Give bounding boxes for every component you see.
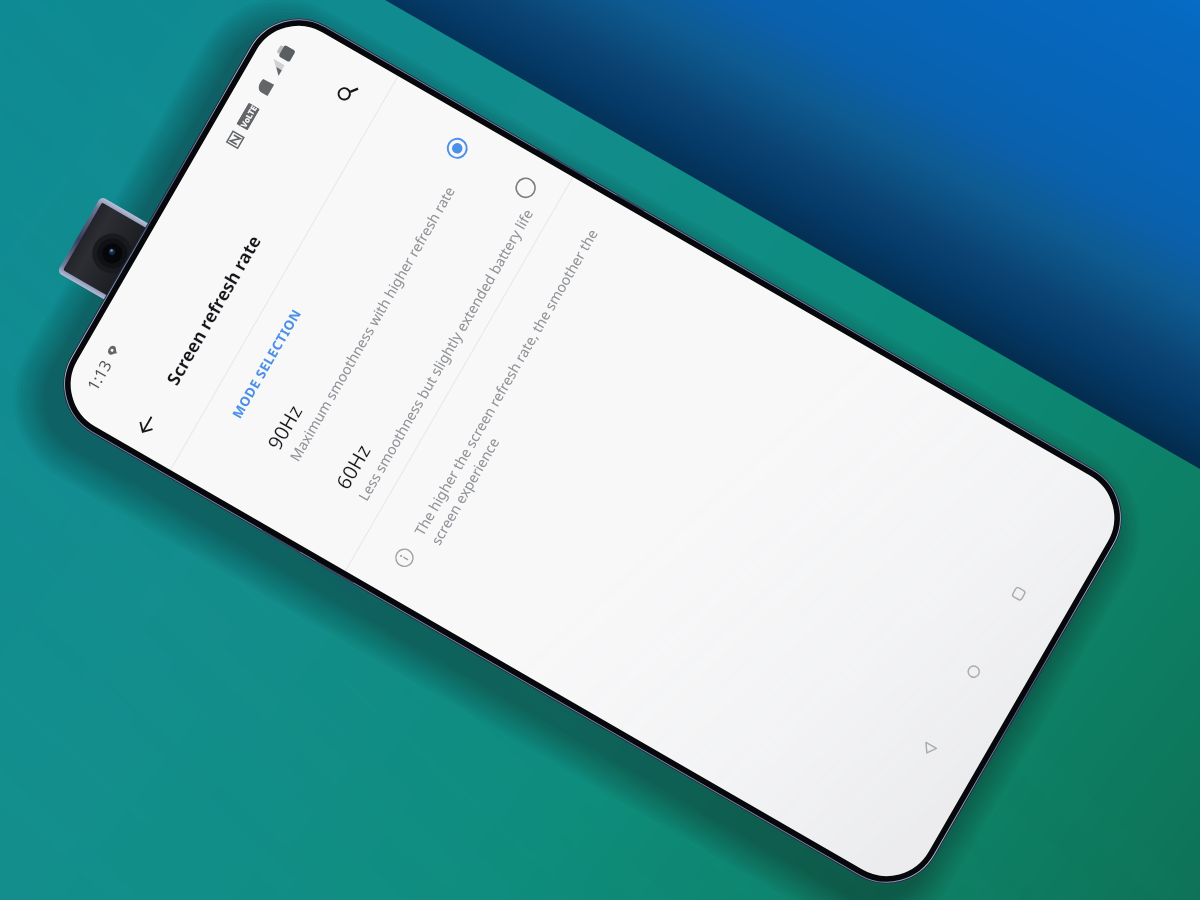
staticText: The higher the screen refresh rate, the … <box>410 215 624 548</box>
staticText: 90Hz <box>261 399 308 454</box>
staticText: VoLTE <box>238 103 259 129</box>
button[interactable]: Home <box>944 643 1002 701</box>
staticText: 1:13 <box>82 356 117 395</box>
staticText: MODE SELECTION <box>228 305 305 422</box>
button[interactable]: 90Hz <box>214 100 505 533</box>
staticText: Maximum smoothness with higher refresh r… <box>285 183 459 464</box>
staticText: Screen refresh rate <box>161 230 266 389</box>
button[interactable]: Navigate up <box>124 401 170 448</box>
button[interactable]: Recents <box>989 565 1047 623</box>
button[interactable]: Search <box>324 69 370 115</box>
staticText: Less smoothness but slightly extended ba… <box>354 205 537 504</box>
button[interactable]: 60Hz <box>282 140 574 572</box>
staticText: 60Hz <box>329 439 377 494</box>
button[interactable]: Back <box>900 720 957 778</box>
